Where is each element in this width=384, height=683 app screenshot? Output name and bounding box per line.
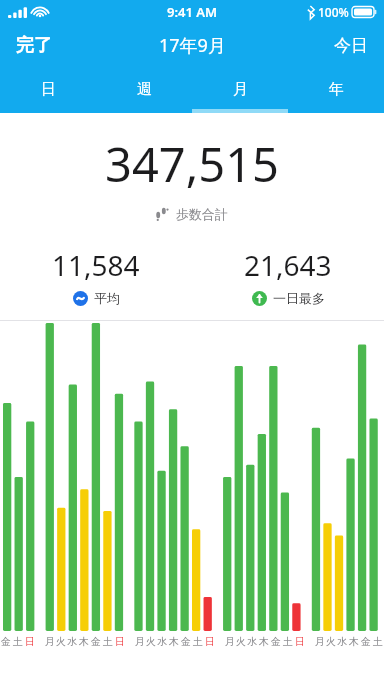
staticText: 水 — [247, 635, 257, 648]
staticText: 347,515 — [105, 132, 279, 196]
staticText: 100% — [318, 4, 349, 20]
staticText: 17年9月 — [159, 33, 226, 58]
staticText: 火 — [326, 635, 336, 648]
staticText: 年 — [329, 80, 344, 99]
staticText: 月 — [315, 635, 325, 648]
staticText: 金 — [271, 635, 281, 648]
button[interactable]: 完了 — [0, 28, 68, 63]
staticText: 21,643 — [244, 246, 332, 284]
staticText: 一日最多 — [273, 290, 325, 306]
button[interactable]: 日 — [0, 66, 96, 113]
button[interactable]: 21,643 — [192, 246, 384, 306]
staticText: 日 — [295, 635, 305, 648]
staticText: 月 — [135, 635, 145, 648]
staticText: 金 — [91, 635, 101, 648]
staticText: 日 — [41, 80, 56, 99]
staticText: 月 — [233, 80, 248, 99]
staticText: 金 — [361, 635, 371, 648]
staticText: 土 — [13, 635, 23, 648]
staticText: 金 — [181, 635, 191, 648]
staticText: 木 — [169, 635, 179, 648]
staticText: 木 — [79, 635, 89, 648]
staticText: 水 — [67, 635, 77, 648]
button[interactable]: 11,584 — [0, 246, 192, 306]
staticText: 日 — [25, 635, 35, 648]
staticText: 完了 — [16, 34, 52, 57]
staticText: 金 — [1, 635, 11, 648]
staticText: 火 — [56, 635, 66, 648]
staticText: 11,584 — [52, 246, 140, 284]
staticText: 今日 — [334, 35, 368, 56]
staticText: 日 — [115, 635, 125, 648]
button[interactable]: 月 — [192, 66, 288, 113]
staticText: 歩数合計 — [176, 206, 228, 222]
staticText: 火 — [146, 635, 156, 648]
staticText: 月 — [225, 635, 235, 648]
button[interactable]: 今日 — [318, 29, 384, 62]
staticText: 火 — [236, 635, 246, 648]
other: Average — [73, 291, 88, 306]
staticText: 9:41 AM — [167, 3, 218, 21]
staticText: 土 — [193, 635, 203, 648]
staticText: 水 — [157, 635, 167, 648]
staticText: 土 — [283, 635, 293, 648]
staticText: 週 — [137, 80, 152, 99]
button[interactable]: 週 — [96, 66, 192, 113]
staticText: 日 — [205, 635, 215, 648]
button[interactable]: 年 — [288, 66, 384, 113]
other: Daily max — [252, 291, 267, 306]
staticText: 水 — [337, 635, 347, 648]
staticText: 土 — [373, 635, 383, 648]
staticText: 月 — [45, 635, 55, 648]
staticText: 土 — [103, 635, 113, 648]
staticText: 木 — [349, 635, 359, 648]
staticText: 木 — [259, 635, 269, 648]
other: Steps — [156, 207, 169, 221]
staticText: 平均 — [94, 290, 120, 306]
